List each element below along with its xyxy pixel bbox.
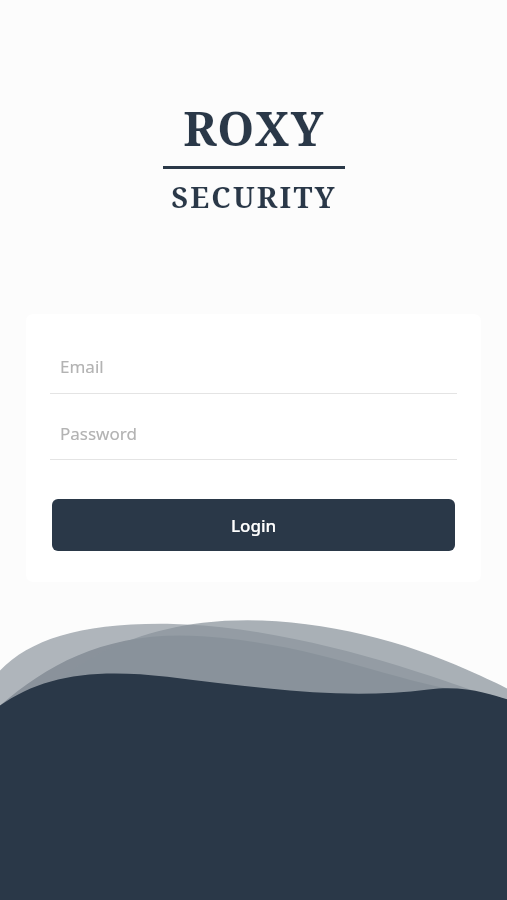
button[interactable]: Login — [52, 499, 455, 551]
staticText: Password — [60, 422, 137, 445]
button[interactable]: Email — [26, 314, 481, 394]
staticText: Login — [231, 514, 277, 537]
staticText: SECURITY — [171, 177, 337, 216]
staticText: Email — [60, 355, 104, 378]
staticText: ROXY — [183, 96, 325, 160]
button[interactable]: Password — [26, 394, 481, 460]
